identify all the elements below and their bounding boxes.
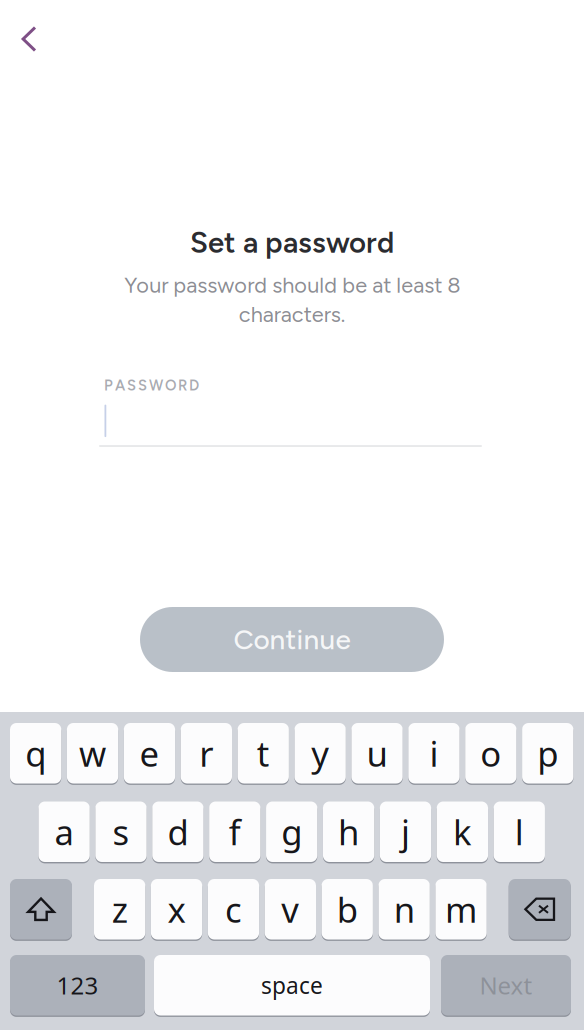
button[interactable]: l	[494, 800, 545, 863]
button[interactable]: j	[380, 800, 431, 863]
staticText: Set a password	[190, 225, 394, 260]
staticText: a	[55, 809, 74, 855]
staticText: q	[25, 730, 46, 776]
staticText: g	[281, 809, 302, 855]
button[interactable]: Shift	[10, 877, 72, 941]
button[interactable]: w	[67, 721, 118, 785]
staticText: l	[515, 809, 524, 855]
button[interactable]: m	[435, 877, 487, 941]
staticText: space	[261, 970, 323, 1000]
button[interactable]: t	[238, 721, 289, 785]
staticText: i	[429, 730, 438, 776]
button[interactable]: a	[38, 800, 90, 863]
button[interactable]: Back	[2, 13, 56, 65]
button[interactable]: f	[209, 800, 260, 863]
staticText: 123	[56, 969, 98, 1001]
staticText: h	[338, 809, 359, 855]
button[interactable]: i	[408, 721, 460, 785]
button[interactable]: d	[152, 800, 203, 863]
button[interactable]: space	[154, 953, 430, 1017]
staticText: y	[311, 730, 329, 776]
staticText: c	[225, 886, 242, 932]
staticText: b	[337, 886, 358, 932]
staticText: v	[281, 886, 299, 932]
staticText: o	[480, 730, 501, 776]
button[interactable]: k	[437, 800, 488, 863]
staticText: p	[537, 730, 558, 776]
staticText: f	[229, 809, 241, 855]
staticText: Next	[479, 969, 532, 1001]
staticText: w	[79, 730, 106, 776]
staticText: t	[257, 730, 270, 776]
staticText: n	[394, 886, 415, 932]
staticText: z	[112, 886, 128, 932]
staticText: k	[453, 809, 472, 855]
button[interactable]: x	[151, 877, 202, 941]
staticText: e	[139, 730, 159, 776]
button[interactable]: g	[266, 800, 317, 863]
button[interactable]: s	[95, 800, 147, 863]
staticText: x	[168, 886, 186, 932]
button[interactable]: v	[265, 877, 316, 941]
button[interactable]: Next	[441, 953, 571, 1017]
staticText: m	[445, 886, 477, 932]
staticText: Continue	[233, 623, 350, 656]
button[interactable]: 123	[10, 953, 145, 1017]
button[interactable]: u	[351, 721, 403, 785]
staticText: P A S S W O R D	[104, 376, 199, 394]
button[interactable]: n	[378, 877, 430, 941]
button[interactable]: r	[181, 721, 232, 785]
button[interactable]: y	[294, 721, 346, 785]
button[interactable]: Delete	[509, 877, 571, 941]
button[interactable]: o	[465, 721, 516, 785]
staticText: s	[112, 809, 129, 855]
staticText: u	[366, 730, 387, 776]
staticText: r	[199, 730, 213, 776]
button[interactable]: z	[94, 877, 145, 941]
button[interactable]: b	[322, 877, 373, 941]
staticText: Your password should be at least 8 chara…	[124, 272, 460, 327]
staticText: j	[401, 809, 410, 855]
staticText: d	[167, 809, 188, 855]
button[interactable]: e	[124, 721, 175, 785]
button[interactable]: q	[10, 721, 61, 785]
button[interactable]: p	[522, 721, 573, 785]
button[interactable]: Continue	[140, 607, 444, 672]
button[interactable]: c	[208, 877, 259, 941]
button[interactable]: h	[323, 800, 374, 863]
